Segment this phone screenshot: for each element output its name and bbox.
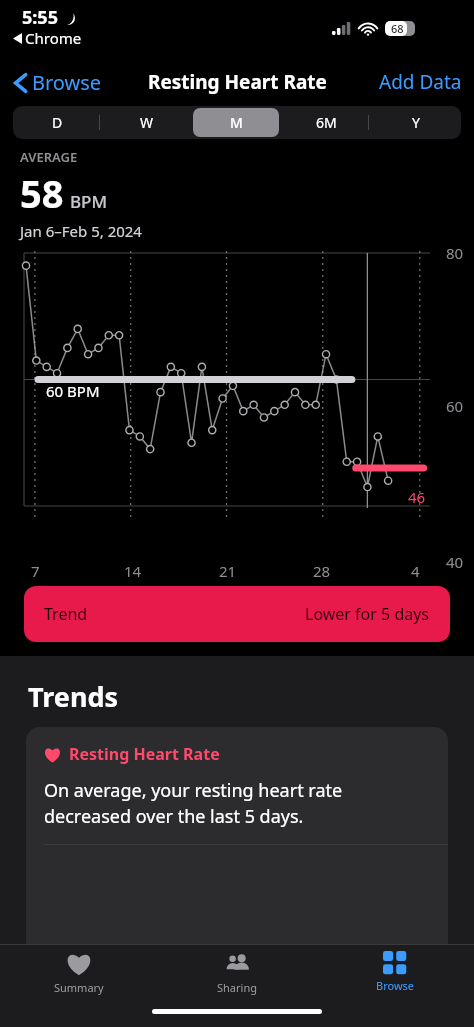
staticText: Y	[412, 113, 420, 132]
staticText: Resting Heart Rate	[69, 743, 220, 765]
other: Browse	[383, 951, 407, 975]
staticText: On average, your resting heart rate decr…	[44, 778, 424, 828]
staticText: 5:55	[22, 5, 58, 30]
staticText: Trends	[28, 678, 119, 715]
staticText: Chrome	[25, 28, 82, 48]
staticText: AVERAGE	[20, 148, 78, 166]
staticText: Browse	[376, 978, 415, 993]
staticText: 58	[20, 167, 64, 219]
other: Summary	[66, 951, 92, 977]
staticText: 28	[313, 561, 331, 581]
staticText: Browse	[32, 69, 102, 96]
staticText: 68	[391, 21, 404, 36]
button[interactable]: Browse	[316, 945, 474, 1001]
button[interactable]: Y	[373, 108, 459, 137]
staticText: Lower for 5 days	[305, 603, 430, 625]
staticText: D	[52, 113, 63, 132]
staticText: 7	[31, 561, 40, 581]
staticText: W	[140, 113, 154, 132]
staticText: Summary	[54, 980, 104, 995]
button[interactable]: Summary	[0, 945, 158, 1001]
staticText: M	[230, 113, 243, 132]
staticText: 46	[408, 487, 426, 507]
staticText: 4	[411, 561, 420, 581]
button[interactable]: Resting Heart Rate	[26, 727, 448, 944]
staticText: 6M	[316, 113, 337, 132]
staticText: Trend	[44, 603, 88, 625]
staticText: 21	[219, 561, 237, 581]
staticText: Resting Heart Rate	[148, 69, 327, 95]
staticText: 60 BPM	[46, 381, 100, 401]
staticText: 40	[446, 552, 464, 572]
staticText: 14	[124, 561, 142, 581]
button[interactable]: D	[15, 108, 100, 137]
staticText: Jan 6–Feb 5, 2024	[20, 221, 142, 241]
staticText: Sharing	[217, 980, 257, 995]
button[interactable]: Sharing	[158, 945, 316, 1001]
button[interactable]: Browse	[8, 63, 108, 102]
other: Sharing	[224, 951, 250, 977]
button[interactable]: Add Data	[367, 61, 474, 103]
staticText: BPM	[70, 190, 108, 213]
button[interactable]: W	[104, 108, 189, 137]
button[interactable]: M	[193, 108, 279, 137]
button[interactable]: 6M	[283, 108, 369, 137]
button[interactable]: Trend	[24, 586, 450, 642]
staticText: 80	[446, 243, 464, 263]
staticText: 60	[446, 396, 464, 416]
